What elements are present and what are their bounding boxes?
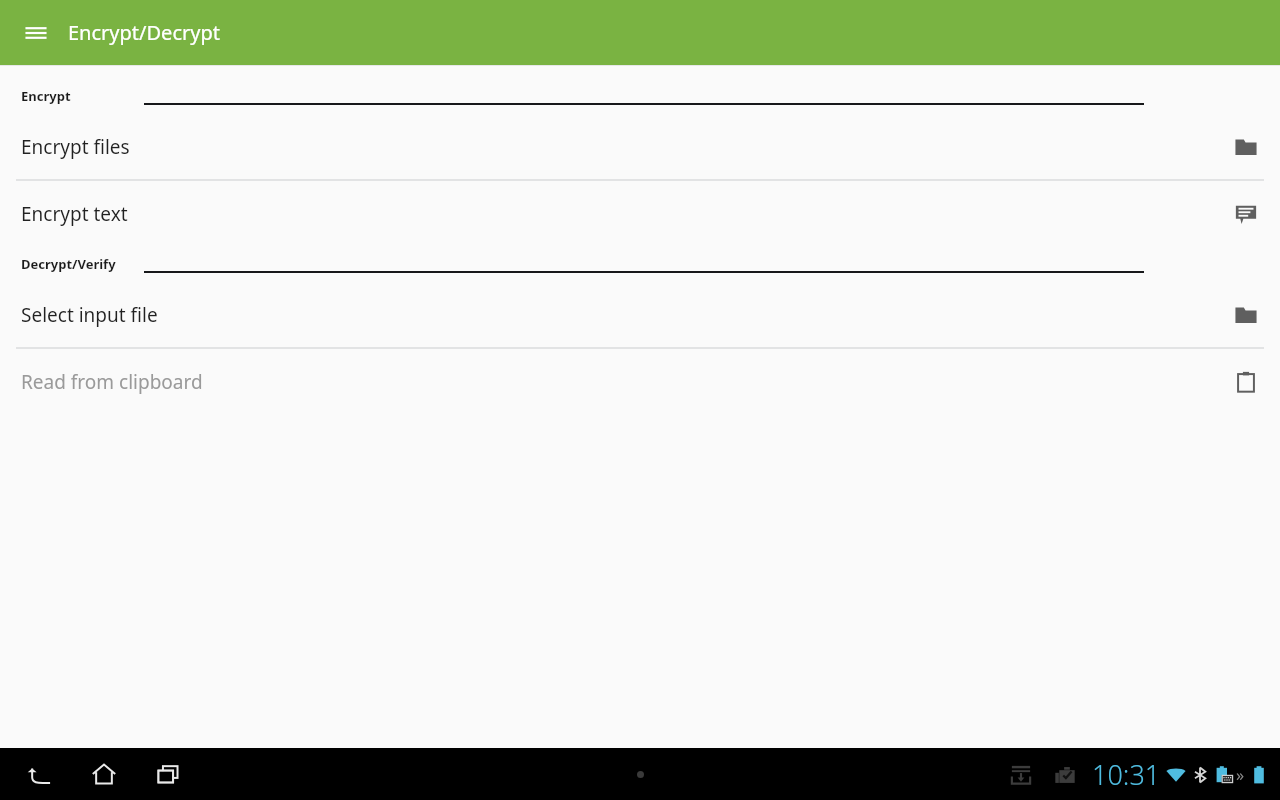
staticText: Encrypt files (21, 134, 1229, 160)
button[interactable]: Recent apps (136, 748, 200, 800)
button[interactable]: Read from clipboard (0, 349, 1280, 414)
staticText: Encrypt (21, 87, 71, 105)
staticText: Encrypt text (21, 201, 1229, 227)
button[interactable]: Home (72, 748, 136, 800)
other: Encrypt text (1235, 203, 1257, 225)
other: Browse files (1235, 136, 1257, 158)
staticText: Select input file (21, 302, 1229, 328)
other: Browse files (1235, 304, 1257, 326)
staticText: Decrypt/Verify (21, 255, 116, 273)
button[interactable]: Back (8, 748, 72, 800)
staticText: 10:31 (1092, 756, 1161, 793)
staticText: Encrypt/Decrypt (68, 19, 220, 46)
button[interactable]: Encrypt files (0, 114, 1280, 179)
staticText: » (1236, 764, 1245, 786)
button[interactable]: Select input file (0, 282, 1280, 347)
button[interactable]: Encrypt text (0, 181, 1280, 246)
button[interactable]: Open navigation drawer (14, 11, 58, 55)
staticText: Read from clipboard (21, 369, 1229, 395)
other: Read from clipboard (1235, 371, 1257, 393)
